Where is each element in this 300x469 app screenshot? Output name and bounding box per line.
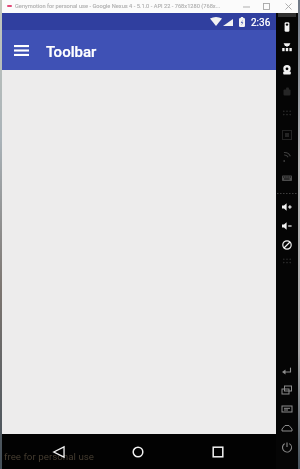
button[interactable]: Volume down	[278, 217, 296, 235]
button[interactable]: Identifiers	[278, 126, 296, 144]
button[interactable]: Recents	[208, 434, 228, 469]
button[interactable]: Maximize	[256, 0, 277, 13]
button[interactable]: Menu	[278, 400, 296, 418]
staticText: Genymotion for personal use - Google Nex…	[15, 3, 221, 10]
staticText: 2:36	[251, 17, 271, 29]
button[interactable]: Home	[128, 434, 148, 469]
button[interactable]: Back	[49, 434, 69, 469]
button[interactable]: Rotate	[278, 236, 296, 254]
button[interactable]: Close	[278, 0, 299, 13]
button[interactable]: GPS	[278, 39, 296, 57]
button[interactable]: Power	[278, 438, 296, 456]
button[interactable]: Minimize	[236, 0, 257, 13]
button[interactable]: Camera	[278, 61, 296, 79]
button[interactable]: Keyboard	[278, 169, 296, 187]
button[interactable]: Open navigation drawer	[9, 38, 33, 62]
button[interactable]: Disabled control	[278, 83, 296, 101]
staticText: Toolbar	[46, 43, 97, 61]
button[interactable]: Network	[278, 148, 296, 166]
button[interactable]: Volume up	[278, 198, 296, 216]
button[interactable]: More	[278, 104, 296, 122]
button[interactable]: Back	[278, 362, 296, 380]
button[interactable]: Battery	[278, 18, 296, 36]
button[interactable]: Recent apps	[278, 381, 296, 399]
staticText: free for personal use	[4, 451, 95, 462]
button[interactable]: More options	[278, 252, 296, 270]
button[interactable]: Home	[278, 419, 296, 437]
